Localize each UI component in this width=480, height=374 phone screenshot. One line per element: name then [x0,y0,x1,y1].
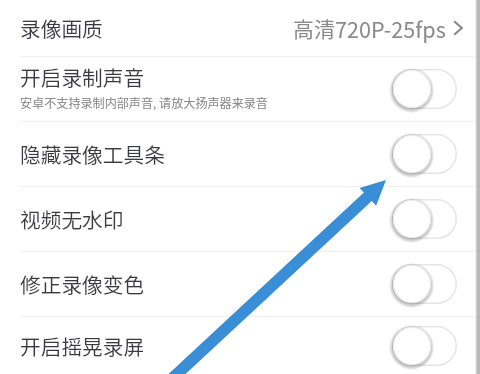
button[interactable]: 修正录像变色 [0,252,480,316]
other: Open 高清720P-25fps chooser [453,20,463,36]
staticText: 安卓不支持录制内部声音, 请放大扬声器来录音 [20,94,268,112]
button[interactable]: 开启录制声音 [0,57,480,121]
button[interactable]: 视频无水印, off [392,199,457,239]
button[interactable]: 隐藏录像工具条 [0,122,480,186]
staticText: 录像画质 [20,13,103,43]
staticText: 开启录制声音 [20,62,145,92]
button[interactable]: 开启录制声音, off [392,69,457,109]
staticText: 视频无水印 [20,204,124,234]
staticText: 隐藏录像工具条 [20,139,165,169]
button[interactable]: 隐藏录像工具条, off [392,134,457,174]
staticText: 高清 [293,13,335,43]
button[interactable]: 开启摇晃录屏 [0,317,480,374]
staticText: 开启摇晃录屏 [20,331,145,361]
button[interactable]: 开启摇晃录屏, off [392,326,457,366]
staticText: 修正录像变色 [20,269,145,299]
staticText: 720P-25fps [335,13,446,44]
button[interactable]: 视频无水印 [0,187,480,251]
button[interactable]: 录像画质 [0,0,480,56]
button[interactable]: 修正录像变色, off [392,264,457,304]
